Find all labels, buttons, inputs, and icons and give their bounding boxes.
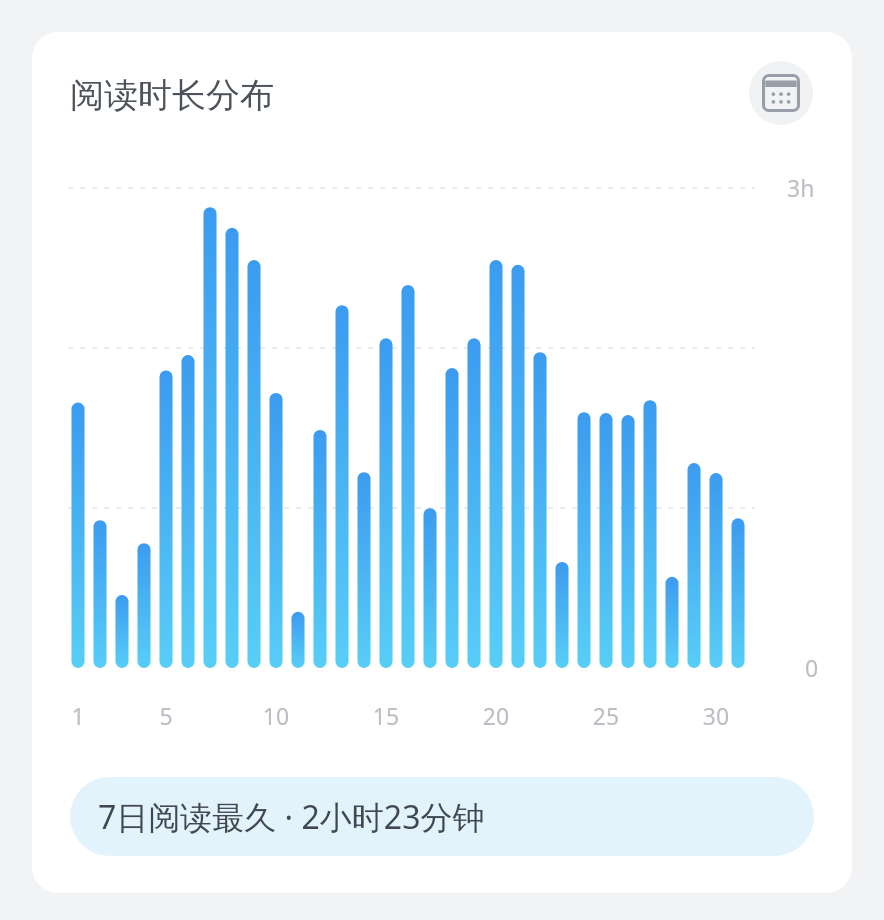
staticText: 阅读时长分布 [70, 74, 274, 117]
staticText: 3h [787, 172, 815, 203]
button[interactable]: Select date range [749, 61, 813, 125]
staticText: 15 [362, 700, 410, 731]
staticText: 20 [472, 700, 520, 731]
staticText: 25 [582, 700, 630, 731]
staticText: 10 [252, 700, 300, 731]
button[interactable]: 7日阅读最久 · 2小时23分钟 [70, 777, 814, 856]
staticText: 5 [142, 700, 190, 731]
staticText: 0 [805, 652, 819, 683]
staticText: 7日阅读最久 · 2小时23分钟 [98, 795, 485, 839]
staticText: 30 [692, 700, 740, 731]
staticText: 1 [54, 700, 102, 731]
